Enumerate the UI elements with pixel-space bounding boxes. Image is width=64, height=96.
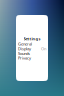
staticText: Display: [18, 46, 31, 51]
staticText: General: [18, 41, 32, 47]
staticText: Privacy: [18, 55, 31, 61]
button[interactable]: Sounds: [16, 51, 48, 56]
staticText: Settings: [23, 36, 40, 41]
staticText: On: [41, 46, 46, 51]
button[interactable]: Display: [16, 46, 48, 51]
staticText: Sounds: [18, 51, 30, 56]
button[interactable]: General: [16, 42, 48, 46]
button[interactable]: Privacy: [16, 56, 48, 60]
